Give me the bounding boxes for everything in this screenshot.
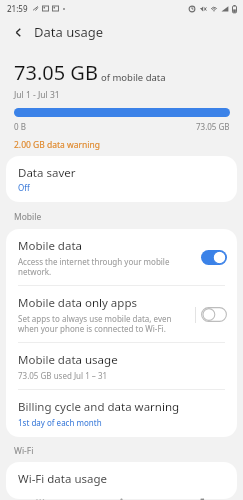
- staticText: 1st day of each month: [18, 417, 102, 428]
- button[interactable]: Back: [162, 499, 243, 500]
- staticText: Access the internet through your mobile …: [18, 256, 195, 277]
- staticText: 73.05 GB: [14, 59, 98, 86]
- staticText: Wi-Fi: [14, 445, 34, 457]
- button[interactable]: Back: [6, 20, 30, 44]
- button[interactable]: Mobile data usage: [6, 343, 237, 389]
- staticText: Jul 1 - Jul 31: [14, 89, 60, 101]
- staticText: Set apps to always use mobile data, even…: [18, 313, 190, 334]
- button[interactable]: Billing cycle and data warning: [6, 390, 237, 437]
- staticText: Off: [18, 182, 30, 193]
- button[interactable]: Data saver: [6, 156, 237, 202]
- staticText: 73.05 GB: [196, 121, 230, 132]
- staticText: Billing cycle and data warning: [18, 399, 180, 415]
- staticText: Mobile data usage: [18, 352, 118, 368]
- staticText: 2.00 GB data warning: [14, 139, 100, 151]
- staticText: Mobile: [14, 211, 42, 223]
- button[interactable]: Mobile data: [6, 229, 237, 285]
- staticText: 73.05 GB used Jul 1 – 31: [18, 370, 108, 381]
- button[interactable]: Recents: [0, 499, 81, 500]
- staticText: 21:59: [7, 3, 28, 14]
- button[interactable]: Wi-Fi data usage: [6, 462, 237, 499]
- staticText: Mobile data only apps: [18, 295, 137, 311]
- button[interactable]: Mobile data only apps: [6, 286, 237, 342]
- button[interactable]: Home: [81, 499, 162, 500]
- staticText: Data usage: [34, 23, 104, 41]
- staticText: Wi-Fi data usage: [18, 471, 108, 487]
- staticText: Data saver: [18, 165, 76, 181]
- staticText: of mobile data: [101, 71, 166, 84]
- staticText: Mobile data: [18, 238, 82, 254]
- staticText: 0 B: [14, 121, 26, 132]
